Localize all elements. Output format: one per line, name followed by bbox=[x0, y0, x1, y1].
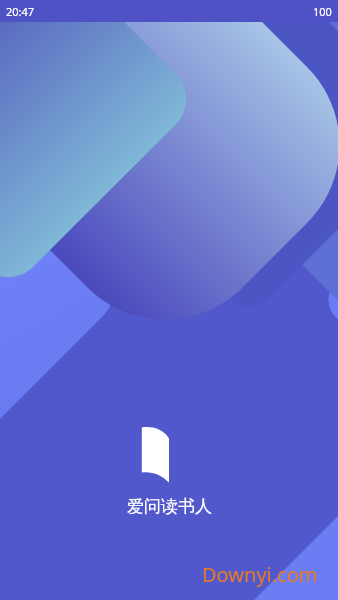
staticText: 20:47 bbox=[6, 4, 35, 19]
staticText: 爱问读书人 bbox=[127, 496, 212, 517]
staticText: 100 bbox=[313, 4, 332, 19]
staticText: Downyi.com bbox=[202, 561, 318, 588]
